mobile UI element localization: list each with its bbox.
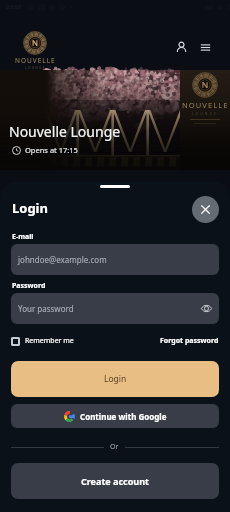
staticText: Nouvelle Lounge	[9, 122, 121, 141]
staticText: E-mail	[12, 232, 34, 242]
button[interactable]: Nouvelle Lounge	[12, 31, 58, 73]
button[interactable]: Show password	[201, 303, 212, 314]
button[interactable]: Your password	[11, 293, 219, 324]
button[interactable]: Forgot password	[160, 334, 219, 348]
staticText: Login	[12, 199, 48, 217]
staticText: LOUNGE	[25, 66, 46, 70]
button[interactable]: Menu	[192, 34, 218, 60]
staticText: 03:07	[6, 3, 22, 11]
staticText: Login	[104, 373, 127, 385]
staticText: LOUNGE	[192, 111, 218, 116]
staticText: Or	[110, 442, 119, 452]
staticText: NOUVELLE	[15, 56, 56, 65]
button[interactable]: Continue with Google	[11, 404, 219, 428]
staticText: Opens at 17:15	[25, 145, 78, 155]
button[interactable]: Account	[168, 34, 194, 60]
staticText: Password	[12, 281, 46, 291]
staticText: Create account	[81, 475, 149, 487]
button[interactable]: johndoe@example.com	[11, 244, 219, 275]
staticText: johndoe@example.com	[18, 254, 107, 265]
button[interactable]: Remember me	[11, 334, 74, 348]
staticText: NOUVELLE	[182, 100, 229, 110]
button[interactable]: Create account	[11, 463, 219, 499]
button[interactable]: Close	[192, 196, 219, 223]
button[interactable]: Login	[11, 361, 219, 397]
staticText: Remember me	[25, 336, 74, 346]
staticText: Continue with Google	[80, 411, 167, 422]
staticText: Your password	[18, 303, 74, 314]
